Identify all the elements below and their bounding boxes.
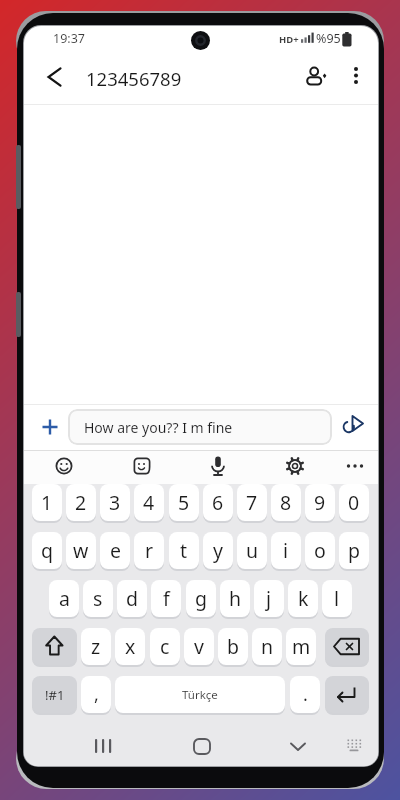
button[interactable]: ,	[81, 676, 111, 713]
button[interactable]: !#1	[32, 676, 77, 713]
button[interactable]: l	[322, 580, 352, 617]
button[interactable]	[325, 628, 369, 665]
button[interactable]: 7	[237, 484, 267, 521]
staticText: t	[180, 537, 188, 564]
button[interactable]: 8	[271, 484, 301, 521]
button[interactable]: s	[83, 580, 113, 617]
staticText: f	[163, 585, 170, 612]
staticText: a	[59, 585, 70, 612]
staticText: m	[292, 633, 311, 660]
staticText: 6	[212, 489, 224, 516]
staticText: Türkçe	[182, 687, 218, 703]
button[interactable]	[345, 735, 365, 757]
button[interactable]: 6	[203, 484, 233, 521]
button[interactable]: r	[134, 532, 164, 569]
staticText: u	[246, 537, 259, 564]
button[interactable]: 4	[134, 484, 164, 521]
staticText: k	[298, 585, 309, 612]
button[interactable]: f	[151, 580, 181, 617]
button[interactable]: o	[305, 532, 335, 569]
staticText: e	[110, 537, 121, 564]
button[interactable]: g	[186, 580, 216, 617]
staticText: i	[283, 537, 289, 564]
button[interactable]: x	[115, 628, 145, 665]
button[interactable]	[38, 62, 68, 92]
staticText: 2	[75, 489, 87, 516]
staticText: 7	[246, 489, 258, 516]
button[interactable]: h	[220, 580, 250, 617]
button[interactable]	[51, 453, 77, 479]
staticText: 8	[280, 489, 292, 516]
staticText: 123456789	[86, 66, 182, 91]
staticText: n	[261, 633, 274, 660]
button[interactable]	[346, 62, 366, 88]
button[interactable]	[287, 735, 309, 757]
button[interactable]	[325, 676, 369, 713]
button[interactable]	[90, 735, 116, 757]
staticText: 1	[41, 489, 53, 516]
button[interactable]	[205, 453, 231, 479]
staticText: d	[126, 585, 138, 612]
staticText: o	[314, 537, 326, 564]
staticText: l	[334, 585, 340, 612]
staticText: .	[303, 682, 308, 707]
button[interactable]	[342, 453, 368, 479]
button[interactable]: d	[117, 580, 147, 617]
button[interactable]: 2	[66, 484, 96, 521]
staticText: 5	[178, 489, 190, 516]
staticText: c	[160, 633, 170, 660]
button[interactable]: i	[271, 532, 301, 569]
staticText: HD+	[279, 33, 299, 46]
staticText: 19:37	[53, 30, 85, 47]
button[interactable]	[340, 414, 366, 436]
button[interactable]: 5	[169, 484, 199, 521]
staticText: How are you?? I m fine	[84, 418, 233, 437]
button[interactable]: n	[252, 628, 282, 665]
button[interactable]: q	[32, 532, 62, 569]
staticText: q	[41, 537, 53, 564]
staticText: w	[73, 537, 89, 564]
staticText: ,	[94, 682, 99, 707]
button[interactable]: 0	[339, 484, 369, 521]
button[interactable]: 9	[305, 484, 335, 521]
staticText: v	[194, 633, 204, 660]
button[interactable]: How are you?? I m fine	[68, 409, 332, 445]
staticText: j	[266, 585, 272, 612]
staticText: g	[195, 585, 207, 612]
button[interactable]: e	[100, 532, 130, 569]
staticText: !#1	[45, 686, 65, 704]
button[interactable]: y	[203, 532, 233, 569]
button[interactable]	[282, 453, 308, 479]
button[interactable]: Türkçe	[115, 676, 285, 713]
staticText: x	[125, 633, 136, 660]
staticText: b	[227, 633, 239, 660]
button[interactable]: m	[286, 628, 316, 665]
button[interactable]	[191, 735, 213, 757]
button[interactable]: k	[288, 580, 318, 617]
staticText: 0	[348, 489, 360, 516]
staticText: 9	[314, 489, 326, 516]
button[interactable]: a	[49, 580, 79, 617]
button[interactable]: z	[81, 628, 111, 665]
staticText: h	[229, 585, 242, 612]
button[interactable]	[32, 628, 77, 665]
button[interactable]: 1	[32, 484, 62, 521]
button[interactable]: 3	[100, 484, 130, 521]
button[interactable]: u	[237, 532, 267, 569]
staticText: z	[91, 633, 101, 660]
button[interactable]: v	[184, 628, 214, 665]
button[interactable]	[302, 60, 338, 90]
button[interactable]: j	[254, 580, 284, 617]
button[interactable]: p	[339, 532, 369, 569]
staticText: y	[213, 537, 223, 564]
button[interactable]: t	[169, 532, 199, 569]
button[interactable]	[129, 453, 155, 479]
button[interactable]: b	[218, 628, 248, 665]
button[interactable]	[36, 413, 64, 441]
button[interactable]: .	[290, 676, 320, 713]
button[interactable]: w	[66, 532, 96, 569]
staticText: 3	[109, 489, 121, 516]
staticText: %95	[316, 30, 341, 47]
staticText: r	[145, 537, 154, 564]
button[interactable]: c	[150, 628, 180, 665]
